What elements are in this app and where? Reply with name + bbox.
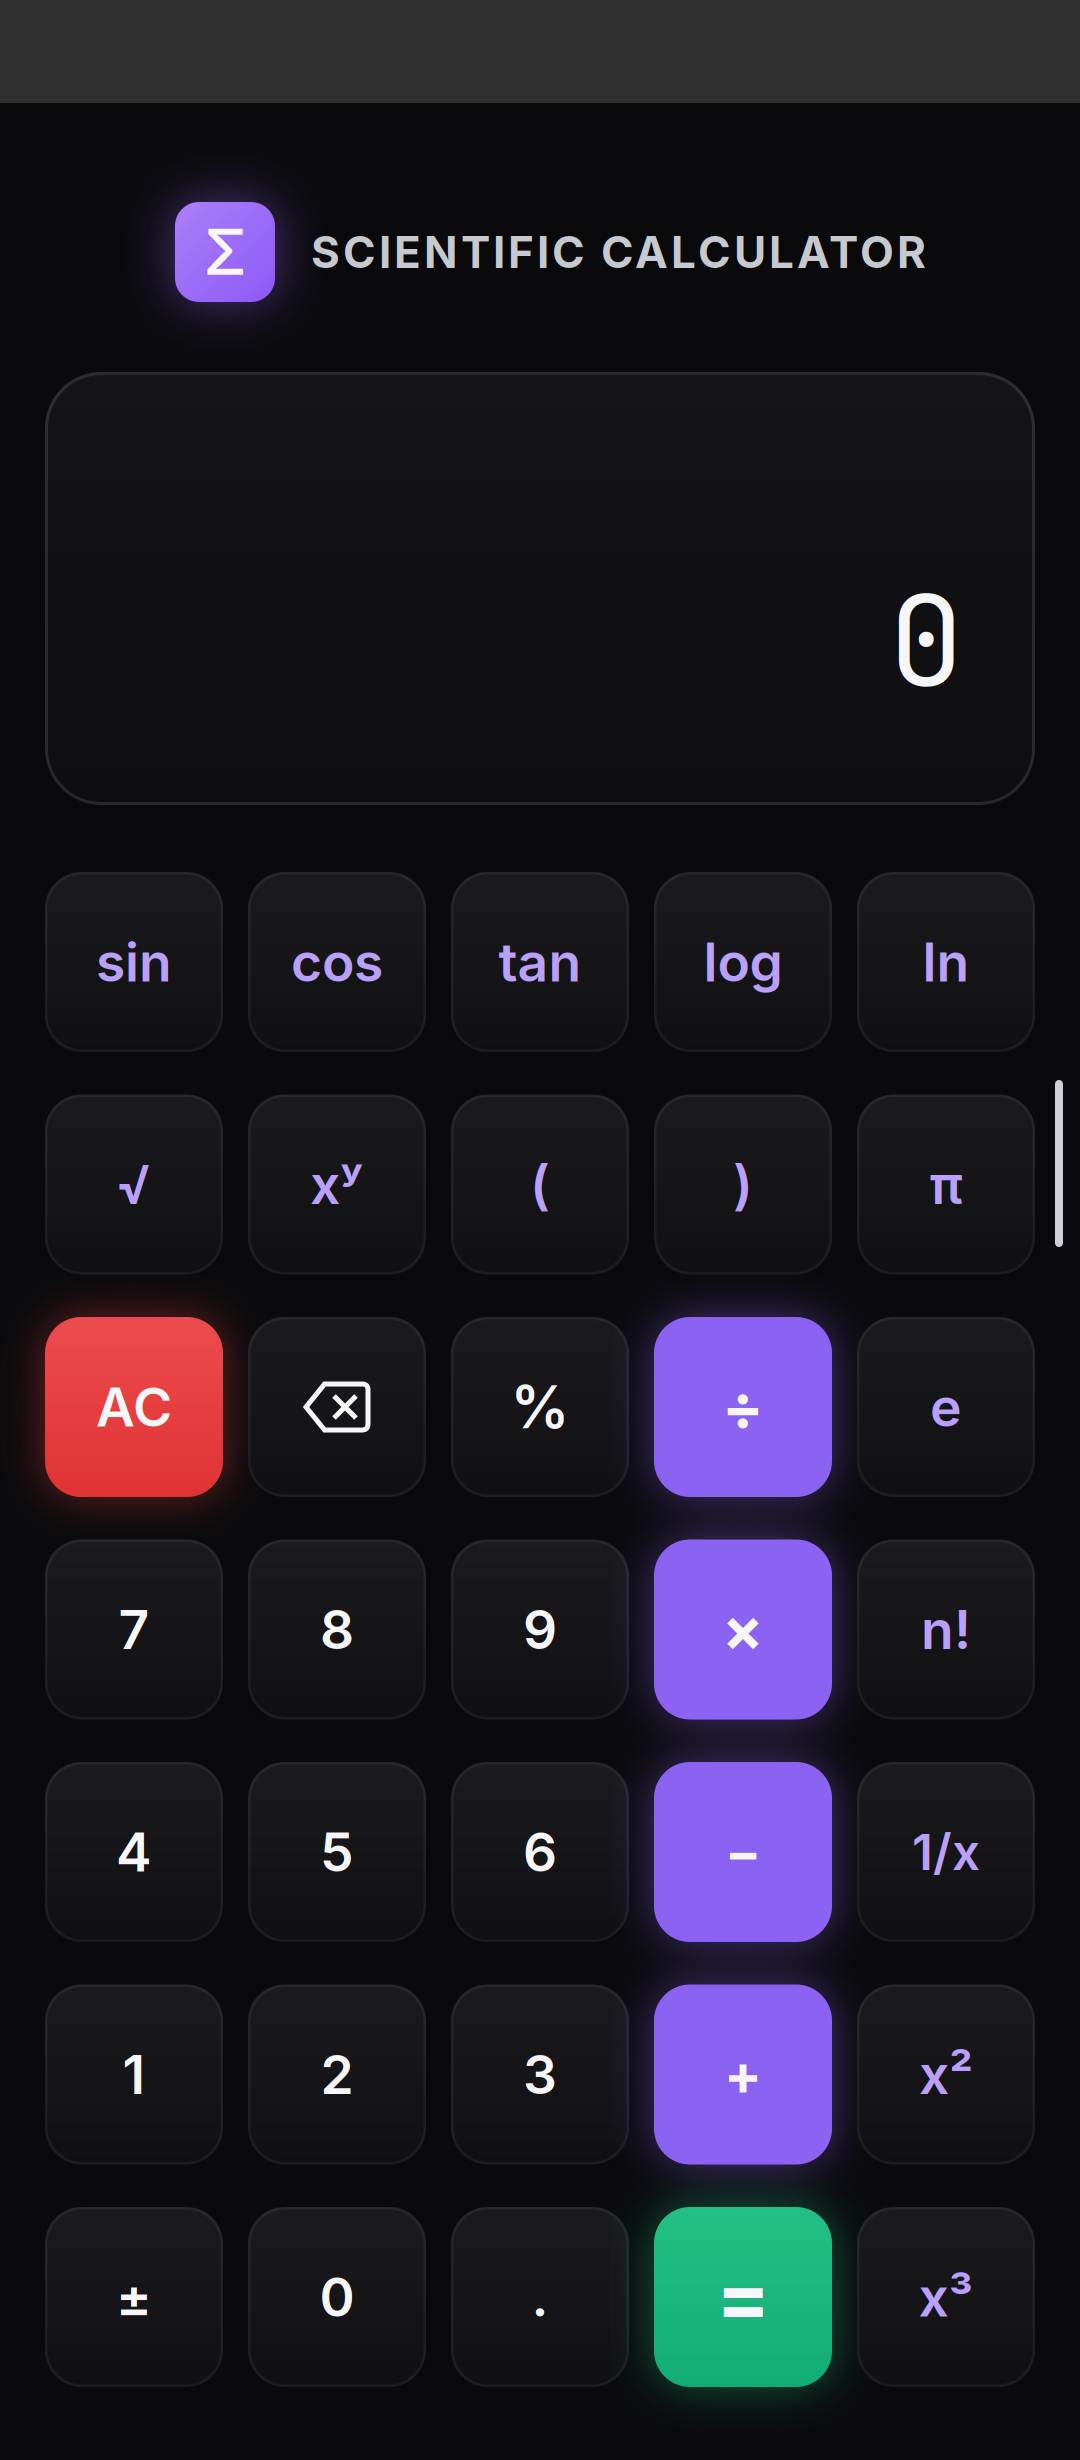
button[interactable]: cos bbox=[248, 872, 426, 1052]
button[interactable]: x³ bbox=[857, 2207, 1035, 2387]
staticText: cos bbox=[291, 930, 383, 994]
button[interactable]: . bbox=[451, 2207, 629, 2387]
button[interactable]: ± bbox=[45, 2207, 223, 2387]
button[interactable]: × bbox=[654, 1539, 832, 1719]
button[interactable]: ln bbox=[857, 872, 1035, 1052]
staticText: √ bbox=[116, 1152, 151, 1217]
button[interactable]: % bbox=[451, 1317, 629, 1497]
button[interactable]: 7 bbox=[45, 1539, 223, 1719]
staticText: sin bbox=[96, 930, 172, 994]
button[interactable]: sin bbox=[45, 872, 223, 1052]
staticText: xʸ bbox=[310, 1152, 364, 1217]
button[interactable]: 4 bbox=[45, 1762, 223, 1942]
button[interactable]: = bbox=[654, 2207, 832, 2387]
button[interactable]: 3 bbox=[451, 1984, 629, 2164]
button[interactable]: 5 bbox=[248, 1762, 426, 1942]
button[interactable]: + bbox=[654, 1984, 832, 2164]
button[interactable]: ) bbox=[654, 1094, 832, 1274]
staticText: − bbox=[725, 1820, 761, 1884]
button[interactable]: 9 bbox=[451, 1539, 629, 1719]
staticText: ± bbox=[116, 2265, 152, 2329]
button[interactable]: 8 bbox=[248, 1539, 426, 1719]
staticText: 1 bbox=[122, 2042, 145, 2107]
staticText: 0 bbox=[319, 2265, 354, 2329]
button[interactable]: x² bbox=[857, 1984, 1035, 2164]
staticText: 9 bbox=[523, 1597, 557, 1662]
staticText: × bbox=[722, 1592, 764, 1667]
staticText: 0 bbox=[889, 559, 963, 723]
staticText: π bbox=[929, 1152, 962, 1217]
button[interactable]: e bbox=[857, 1317, 1035, 1497]
staticText: 4 bbox=[116, 1820, 152, 1884]
staticText: 7 bbox=[118, 1597, 149, 1662]
button[interactable]: xʸ bbox=[248, 1094, 426, 1274]
staticText: 6 bbox=[523, 1820, 557, 1884]
staticText: + bbox=[724, 2041, 762, 2108]
button[interactable]: ÷ bbox=[654, 1317, 832, 1497]
staticText: Σ bbox=[203, 214, 246, 290]
staticText: 5 bbox=[320, 1820, 354, 1884]
staticText: log bbox=[703, 930, 782, 994]
staticText: tan bbox=[498, 930, 581, 994]
button[interactable]: n! bbox=[857, 1539, 1035, 1719]
staticText: x³ bbox=[918, 2265, 973, 2329]
staticText: ) bbox=[733, 1152, 753, 1217]
staticText: = bbox=[716, 2249, 770, 2345]
staticText: e bbox=[930, 1375, 962, 1439]
staticText: ÷ bbox=[722, 1370, 764, 1444]
button[interactable]: √ bbox=[45, 1094, 223, 1274]
button[interactable]: ( bbox=[451, 1094, 629, 1274]
staticText: 3 bbox=[523, 2042, 557, 2107]
button[interactable]: − bbox=[654, 1762, 832, 1942]
staticText: AC bbox=[96, 1375, 172, 1439]
button[interactable]: tan bbox=[451, 872, 629, 1052]
staticText: n! bbox=[921, 1597, 971, 1662]
staticText: x² bbox=[919, 2042, 973, 2107]
button[interactable]: 6 bbox=[451, 1762, 629, 1942]
button[interactable]: 2 bbox=[248, 1984, 426, 2164]
button[interactable]: π bbox=[857, 1094, 1035, 1274]
staticText: 8 bbox=[320, 1597, 354, 1662]
staticText: 2 bbox=[320, 2042, 353, 2107]
staticText: . bbox=[531, 2265, 548, 2329]
staticText: % bbox=[510, 1371, 569, 1442]
staticText: 1/x bbox=[912, 1822, 980, 1882]
staticText: ( bbox=[530, 1152, 550, 1217]
staticText: SCIENTIFIC CALCULATOR bbox=[311, 225, 926, 279]
button[interactable]: 1 bbox=[45, 1984, 223, 2164]
button[interactable]: AC bbox=[45, 1317, 223, 1497]
button[interactable]: 0 bbox=[248, 2207, 426, 2387]
button[interactable]: log bbox=[654, 872, 832, 1052]
button[interactable]: Backspace bbox=[248, 1317, 426, 1497]
button[interactable]: 1/x bbox=[857, 1762, 1035, 1942]
staticText: ln bbox=[922, 930, 969, 994]
